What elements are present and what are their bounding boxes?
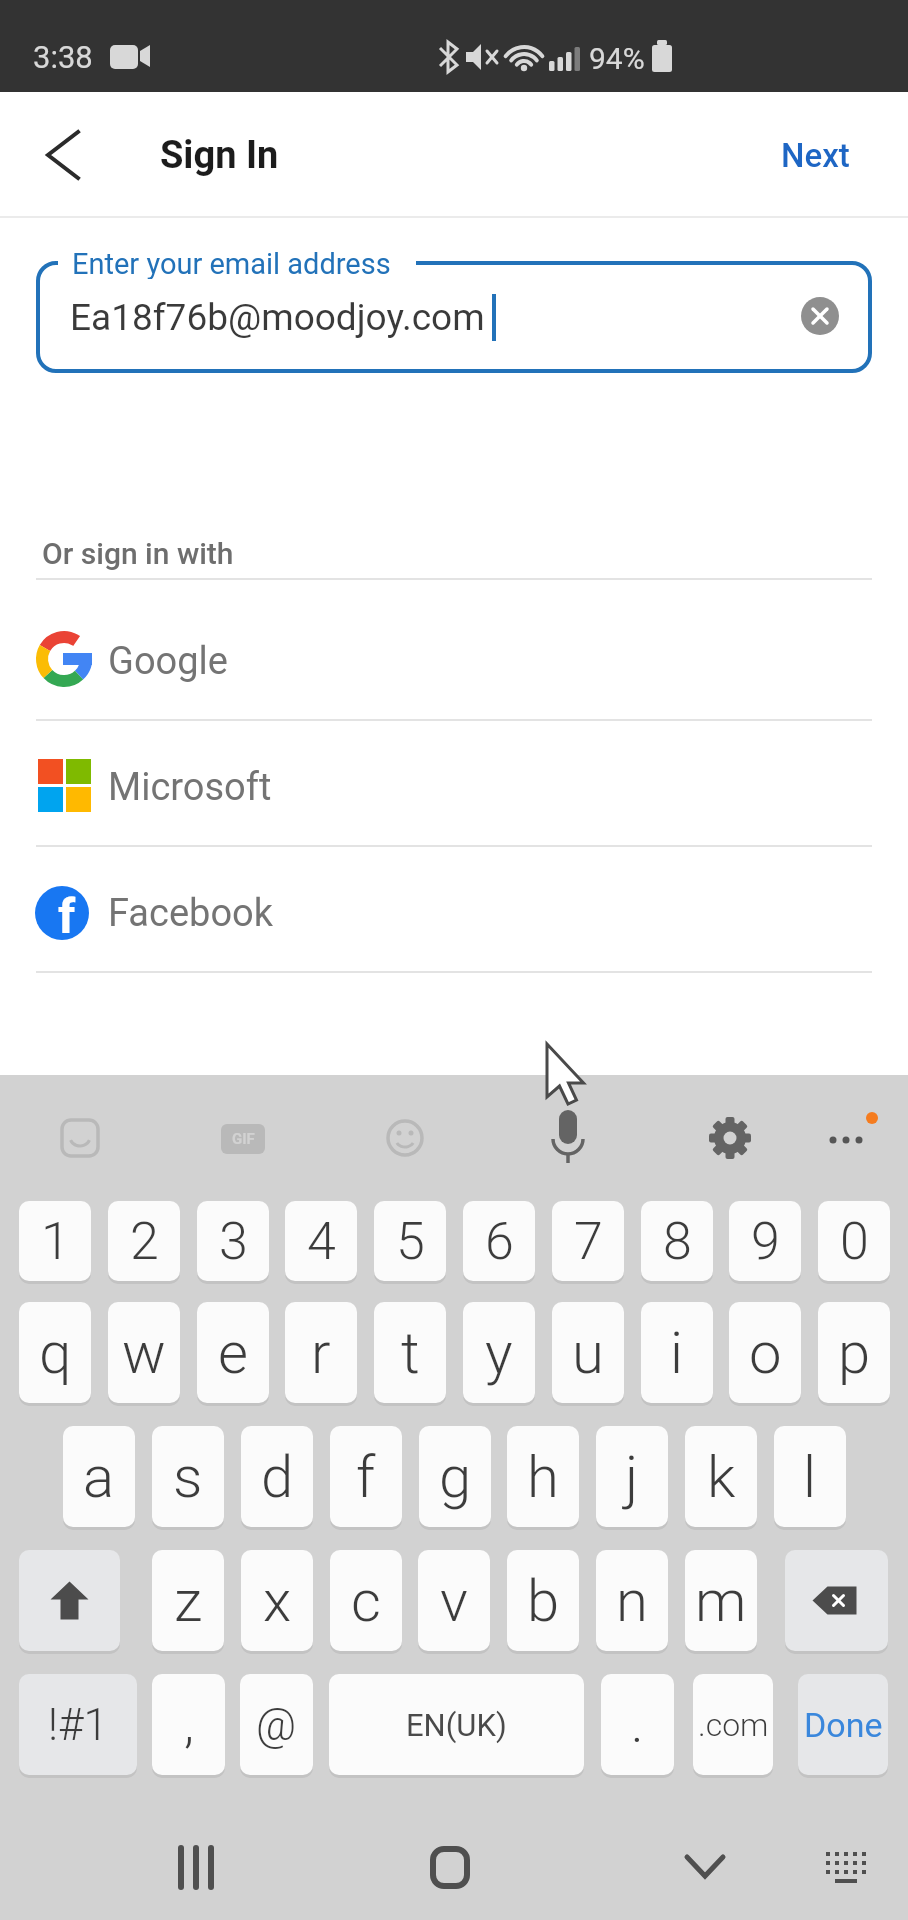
button[interactable]: 2 [108,1201,180,1281]
staticText: o [749,1319,782,1387]
staticText: 4 [307,1211,336,1272]
staticText: 8 [663,1211,692,1272]
button[interactable]: p [818,1302,890,1403]
button[interactable]: a [63,1426,135,1527]
button[interactable]: 9 [729,1201,801,1281]
staticText: Done [804,1705,883,1745]
button[interactable] [812,1100,888,1176]
button[interactable] [0,592,908,719]
staticText: p [838,1319,871,1387]
staticText: Google [108,639,228,684]
button[interactable] [20,115,100,195]
button[interactable]: v [418,1550,490,1651]
button[interactable]: h [507,1426,579,1527]
button[interactable]: Done [798,1674,888,1775]
staticText: Next [781,136,850,175]
button[interactable] [530,1100,606,1176]
button[interactable] [692,1100,768,1176]
button[interactable]: b [507,1550,579,1651]
button[interactable] [801,297,839,335]
button[interactable]: x [241,1550,313,1651]
staticText: h [527,1443,559,1511]
button[interactable]: d [241,1426,313,1527]
staticText: d [261,1443,294,1511]
staticText: GIF [232,1130,255,1148]
button[interactable]: 0 [818,1201,890,1281]
staticText: y [485,1319,513,1387]
button[interactable] [0,847,908,971]
staticText: Microsoft [108,765,272,810]
button[interactable]: l [774,1426,846,1527]
button[interactable]: t [374,1302,446,1403]
staticText: 0 [840,1211,869,1272]
staticText: e [218,1319,248,1387]
button[interactable]: @ [240,1674,313,1775]
button[interactable]: !#1 [19,1674,137,1775]
button[interactable]: s [152,1426,224,1527]
button[interactable]: EN(UK) [329,1674,584,1775]
button[interactable]: g [419,1426,491,1527]
button[interactable] [389,1812,509,1920]
staticText: i [670,1319,684,1387]
button[interactable] [645,1812,765,1920]
button[interactable] [785,1550,888,1651]
button[interactable]: c [330,1550,402,1651]
button[interactable] [40,265,868,369]
button[interactable]: 3 [197,1201,269,1281]
button[interactable]: . [601,1674,674,1775]
button[interactable] [367,1100,443,1176]
button[interactable]: o [729,1302,801,1403]
button[interactable]: 1 [19,1201,91,1281]
button[interactable] [19,1550,120,1651]
button[interactable]: m [685,1550,757,1651]
staticText: a [83,1443,115,1511]
staticText: u [572,1319,604,1387]
button[interactable] [42,1100,118,1176]
button[interactable] [205,1100,281,1176]
staticText: EN(UK) [406,1707,507,1743]
staticText: Or sign in with [42,536,234,571]
staticText: Ea18f76b@moodjoy.com [70,296,485,339]
button[interactable]: k [685,1426,757,1527]
button[interactable]: Next [720,110,850,200]
button[interactable]: u [552,1302,624,1403]
staticText: t [401,1319,420,1387]
button[interactable]: .com [693,1674,773,1775]
staticText: x [263,1567,292,1635]
button[interactable]: z [152,1550,224,1651]
staticText: 7 [574,1211,603,1272]
button[interactable]: q [19,1302,91,1403]
button[interactable]: n [596,1550,668,1651]
staticText: Enter your email address [72,247,391,279]
staticText: . [631,1694,644,1755]
button[interactable]: 5 [374,1201,446,1281]
staticText: 5 [396,1211,425,1272]
staticText: !#1 [48,1699,108,1751]
staticText: 94% [589,41,645,76]
button[interactable]: 4 [285,1201,357,1281]
button[interactable] [785,1812,905,1920]
button[interactable]: r [285,1302,357,1403]
staticText: 3:38 [33,39,93,75]
button[interactable] [0,721,908,845]
button[interactable]: j [596,1426,668,1527]
staticText: s [173,1443,203,1511]
button[interactable]: y [463,1302,535,1403]
button[interactable]: e [197,1302,269,1403]
button[interactable]: i [641,1302,713,1403]
staticText: g [439,1443,472,1511]
staticText: f [356,1443,376,1511]
button[interactable]: 7 [552,1201,624,1281]
staticText: f [58,888,76,944]
staticText: 3 [219,1211,248,1272]
button[interactable] [136,1812,256,1920]
button[interactable]: 8 [641,1201,713,1281]
button[interactable]: 6 [463,1201,535,1281]
staticText: 2 [130,1211,159,1272]
button[interactable]: , [152,1674,225,1775]
button[interactable]: f [330,1426,402,1527]
staticText: v [440,1567,468,1635]
staticText: z [174,1567,203,1635]
button[interactable]: w [108,1302,180,1403]
staticText: k [707,1443,736,1511]
